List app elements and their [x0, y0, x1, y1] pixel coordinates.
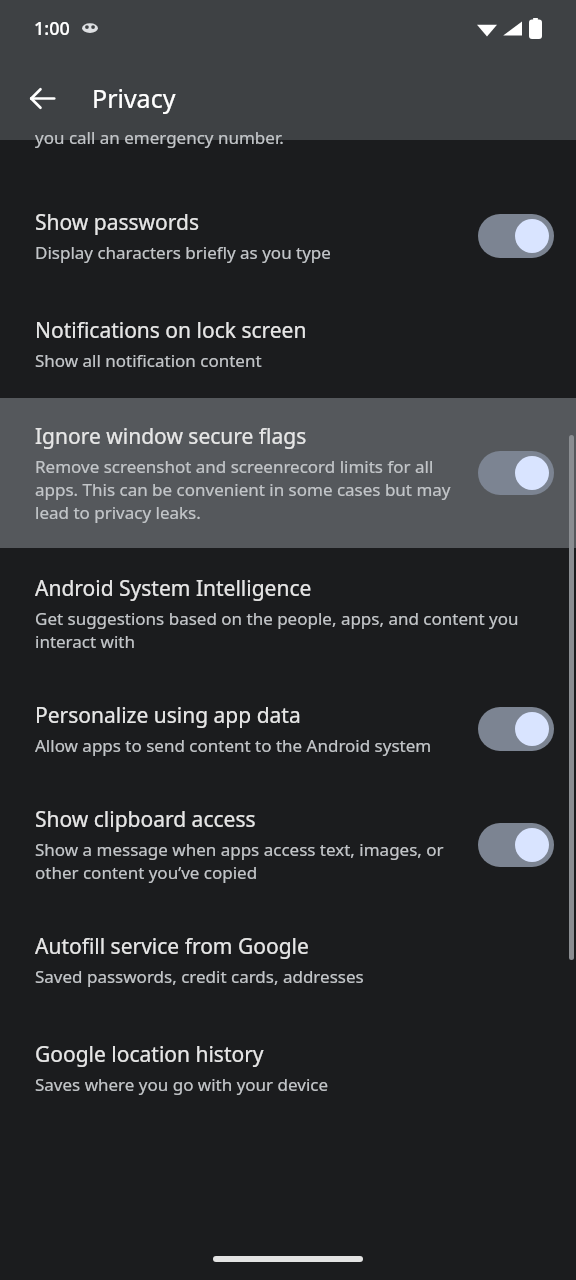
staticText: Notifications on lock screen — [35, 316, 307, 345]
button[interactable]: Personalize using app data — [0, 677, 576, 781]
button[interactable]: Ignore window secure flags — [0, 398, 576, 548]
staticText: Show a message when apps access text, im… — [35, 838, 464, 884]
staticText: Remove screenshot and screenrecord limit… — [35, 455, 464, 524]
staticText: Saved passwords, credit cards, addresses — [35, 965, 364, 988]
button[interactable]: Show clipboard access — [0, 781, 576, 908]
staticText: 1:00 — [34, 16, 70, 41]
staticText: Google location history — [35, 1040, 264, 1069]
staticText: Show all notification content — [35, 349, 262, 372]
button[interactable]: Show passwords — [0, 186, 576, 290]
staticText: Show passwords — [35, 208, 200, 237]
staticText: you call an emergency number. — [35, 126, 284, 149]
button[interactable]: Notifications on lock screen — [0, 290, 576, 398]
button[interactable]: Toggle — [478, 707, 554, 751]
button[interactable]: Toggle — [478, 823, 554, 867]
button[interactable]: Back — [18, 74, 66, 122]
staticText: Saves where you go with your device — [35, 1073, 329, 1096]
staticText: Display characters briefly as you type — [35, 241, 331, 264]
staticText: Show clipboard access — [35, 805, 256, 834]
staticText: Android System Intelligence — [35, 574, 312, 603]
staticText: Get suggestions based on the people, app… — [35, 607, 554, 653]
button[interactable]: Autofill service from Google — [0, 908, 576, 1014]
staticText: Autofill service from Google — [35, 932, 309, 961]
button[interactable]: Toggle — [478, 214, 554, 258]
staticText: Allow apps to send content to the Androi… — [35, 734, 432, 757]
staticText: Personalize using app data — [35, 701, 301, 730]
button[interactable]: Google location history — [0, 1014, 576, 1122]
button[interactable]: Toggle — [478, 451, 554, 495]
staticText: Ignore window secure flags — [35, 422, 307, 451]
staticText: Privacy — [92, 81, 176, 115]
button[interactable]: Android System Intelligence — [0, 548, 576, 677]
